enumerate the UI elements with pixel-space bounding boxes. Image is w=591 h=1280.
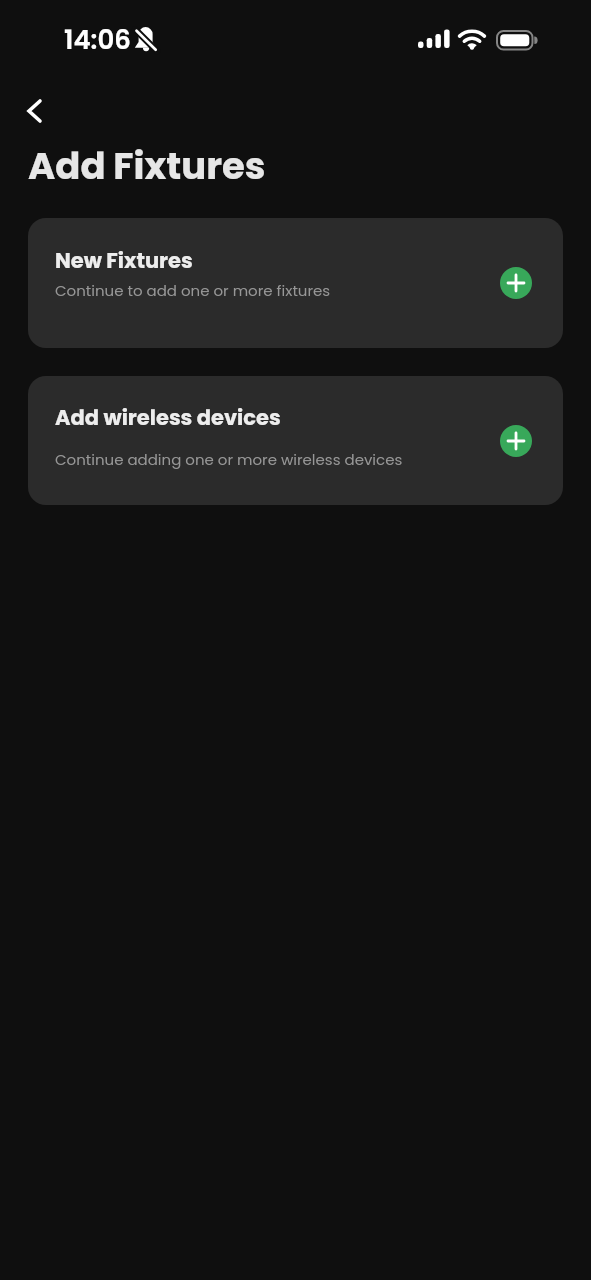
button[interactable] xyxy=(500,425,532,457)
button[interactable] xyxy=(18,90,60,132)
staticText: Add Fixtures xyxy=(28,140,266,192)
button[interactable]: Add wireless devices xyxy=(28,376,563,505)
button[interactable]: New Fixtures xyxy=(28,218,563,348)
staticText: 14:06 xyxy=(64,22,131,58)
staticText: Continue to add one or more fixtures xyxy=(55,280,331,301)
staticText: New Fixtures xyxy=(55,246,193,275)
button[interactable] xyxy=(500,267,532,299)
staticText: Continue adding one or more wireless dev… xyxy=(55,449,403,470)
staticText: Add wireless devices xyxy=(55,403,281,432)
